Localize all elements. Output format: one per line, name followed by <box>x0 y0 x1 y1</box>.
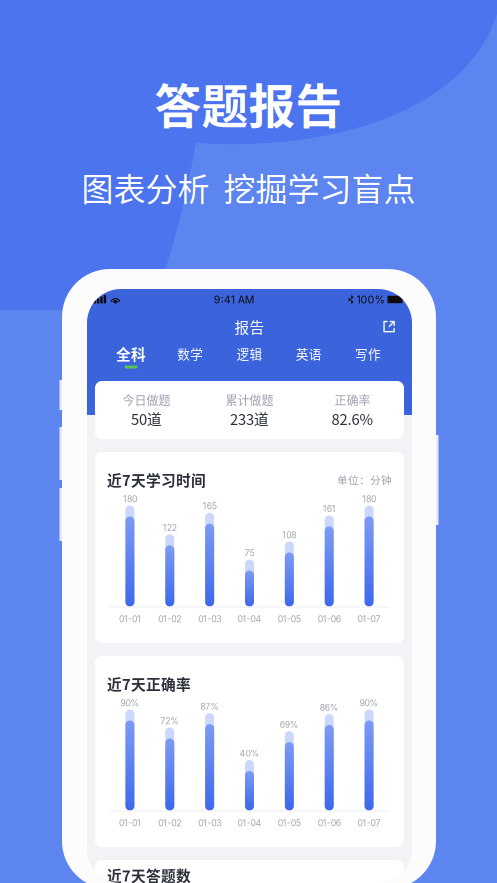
staticText: 正确率 <box>334 391 370 409</box>
staticText: 英语 <box>296 344 322 363</box>
staticText: 180 <box>123 494 137 504</box>
staticText: 数学 <box>177 344 203 363</box>
staticText: 01-06 <box>318 614 341 624</box>
staticText: 108 <box>282 530 296 540</box>
staticText: 报告 <box>234 316 264 337</box>
staticText: 72% <box>160 716 179 726</box>
staticText: 40% <box>239 748 259 759</box>
button[interactable]: 写作 <box>338 343 397 371</box>
staticText: 90% <box>120 698 139 708</box>
staticText: 90% <box>360 698 379 708</box>
staticText: 75 <box>244 548 254 558</box>
staticText: 01-01 <box>119 818 141 828</box>
staticText: 01-03 <box>198 818 221 828</box>
staticText: 161 <box>323 504 336 514</box>
button[interactable]: 全科 <box>101 343 161 371</box>
staticText: 01-03 <box>198 614 221 624</box>
staticText: 122 <box>163 523 177 533</box>
staticText: 01-06 <box>318 818 341 828</box>
staticText: 233道 <box>230 408 269 429</box>
staticText: 01-02 <box>158 614 181 624</box>
staticText: 近7天学习时间 <box>107 469 206 490</box>
staticText: 180 <box>362 494 376 504</box>
staticText: 01-05 <box>278 818 301 828</box>
staticText: 50道 <box>131 408 162 429</box>
staticText: 01-05 <box>278 614 301 624</box>
staticText: 01-07 <box>358 614 381 624</box>
staticText: 86% <box>320 702 339 713</box>
button[interactable]: 英语 <box>279 343 338 371</box>
staticText: 01-07 <box>358 818 381 828</box>
button[interactable]: Share report <box>377 314 401 338</box>
staticText: 01-04 <box>237 614 261 624</box>
staticText: 答题报告 <box>154 69 342 137</box>
staticText: 87% <box>200 701 219 712</box>
staticText: 写作 <box>355 344 381 363</box>
staticText: 全科 <box>116 343 146 364</box>
staticText: 图表分析 挖掘学习盲点 <box>81 164 415 210</box>
staticText: 82.6% <box>331 408 373 429</box>
staticText: 单位：分钟 <box>337 472 392 487</box>
staticText: 165 <box>203 501 217 511</box>
staticText: 近7天答题数 <box>107 864 191 883</box>
staticText: 逻辑 <box>236 344 262 363</box>
staticText: 今日做题 <box>122 391 170 409</box>
button[interactable]: 逻辑 <box>220 343 279 371</box>
staticText: 01-04 <box>237 818 261 828</box>
staticText: 100% <box>356 293 384 306</box>
staticText: 累计做题 <box>225 391 273 409</box>
staticText: 近7天正确率 <box>107 673 191 694</box>
staticText: 01-02 <box>158 818 181 828</box>
staticText: 01-01 <box>119 614 141 624</box>
button[interactable]: 数学 <box>161 343 220 371</box>
staticText: 9:41 AM <box>214 293 255 306</box>
staticText: 69% <box>280 719 299 730</box>
